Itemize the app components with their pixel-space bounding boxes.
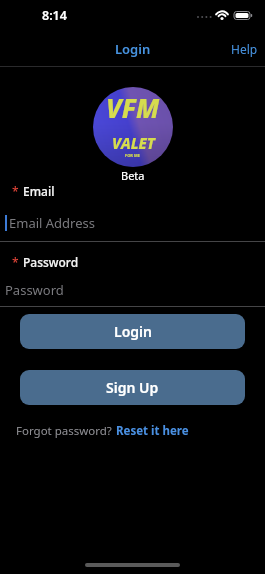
staticText: Sign Up xyxy=(106,378,159,397)
staticText: VALET xyxy=(112,133,155,153)
staticText: Email Address xyxy=(9,214,95,232)
button[interactable]: Password xyxy=(5,281,265,299)
button[interactable]: Email Address xyxy=(5,214,265,232)
button[interactable]: Forgot password? xyxy=(16,423,189,439)
staticText: Login xyxy=(114,322,152,341)
staticText: Beta xyxy=(121,168,145,183)
staticText: Login xyxy=(115,40,151,58)
staticText: Help xyxy=(231,41,258,57)
button[interactable]: Login xyxy=(20,314,245,349)
button[interactable]: Sign Up xyxy=(20,370,245,405)
staticText: Forgot password? xyxy=(16,423,112,439)
staticText: FOR ME xyxy=(125,153,141,158)
staticText: * xyxy=(12,183,19,199)
staticText: * xyxy=(12,254,19,270)
button[interactable]: Help xyxy=(224,31,265,67)
staticText: Email xyxy=(23,183,55,199)
staticText: Password xyxy=(23,254,79,270)
staticText: Reset it here xyxy=(116,423,189,439)
staticText: Password xyxy=(5,281,64,299)
staticText: 8:14 xyxy=(42,7,67,24)
staticText: VFM xyxy=(106,90,160,125)
